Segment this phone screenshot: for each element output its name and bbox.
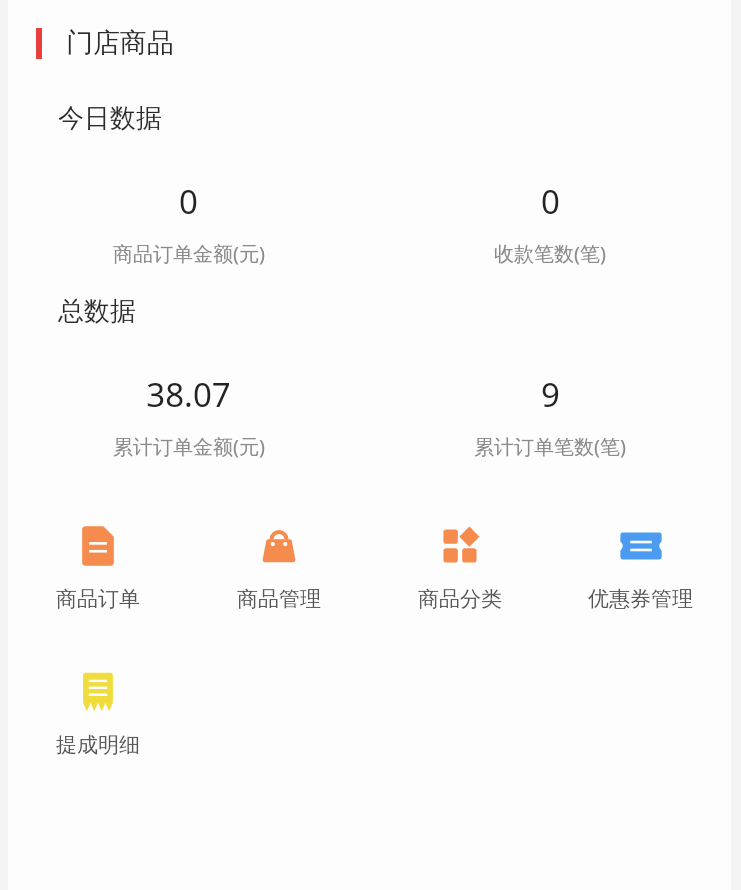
staticText: 商品订单 [56, 586, 140, 612]
staticText: 提成明细 [56, 732, 140, 758]
staticText: 优惠券管理 [588, 586, 693, 612]
staticText: 商品分类 [418, 586, 502, 612]
staticText: 累计订单金额(元) [113, 433, 265, 460]
staticText: 0 [179, 179, 198, 224]
staticText: 今日数据 [58, 102, 162, 135]
staticText: 商品管理 [237, 586, 321, 612]
button[interactable]: 商品订单 [8, 522, 188, 612]
staticText: 9 [541, 372, 560, 417]
button[interactable]: 商品管理 [188, 522, 369, 612]
button[interactable]: 商品分类 [369, 522, 550, 612]
staticText: 0 [541, 179, 560, 224]
button[interactable]: 提成明细 [8, 668, 188, 758]
button[interactable]: 优惠券管理 [550, 522, 731, 612]
staticText: 门店商品 [66, 26, 174, 60]
staticText: 38.07 [146, 372, 231, 417]
staticText: 商品订单金额(元) [113, 240, 265, 267]
staticText: 总数据 [58, 295, 136, 328]
staticText: 累计订单笔数(笔) [474, 433, 626, 460]
staticText: 收款笔数(笔) [494, 240, 606, 267]
